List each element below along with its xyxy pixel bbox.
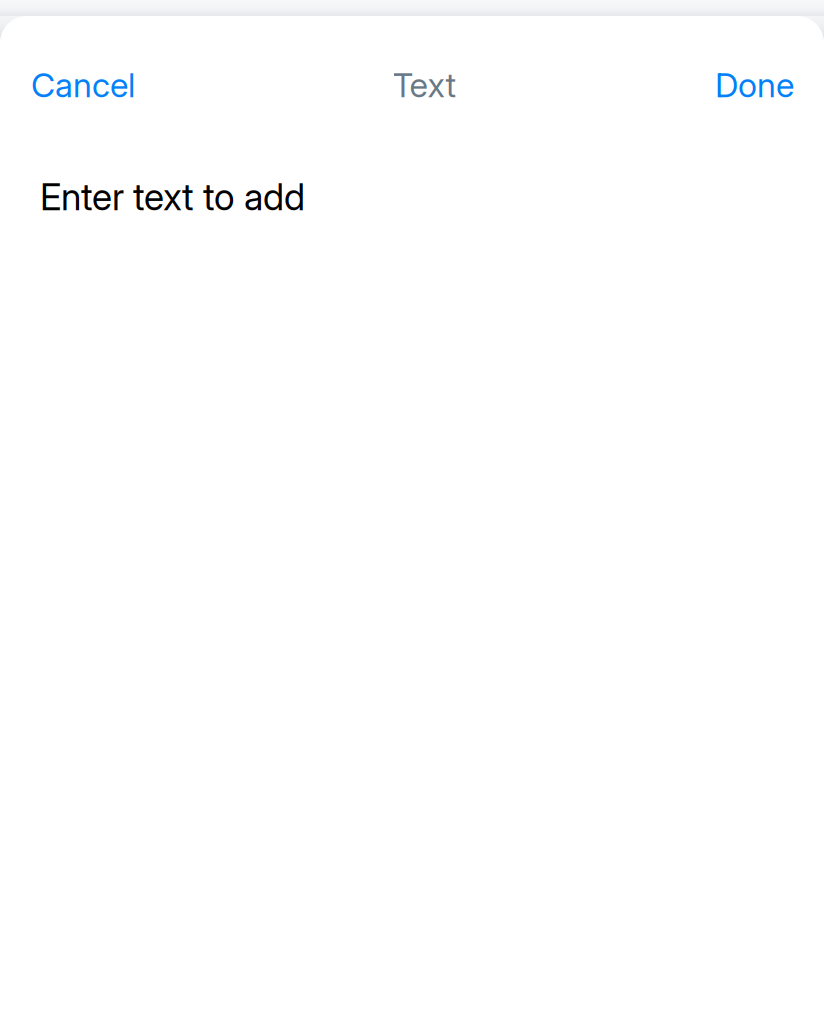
button[interactable]: Cancel (31, 16, 137, 154)
staticText: Enter text to add (40, 175, 305, 219)
staticText: Text (392, 65, 456, 105)
button[interactable]: Done (712, 16, 794, 154)
staticText: Done (715, 65, 794, 105)
staticText: Cancel (31, 65, 135, 105)
button[interactable]: Enter text to add (0, 154, 824, 219)
